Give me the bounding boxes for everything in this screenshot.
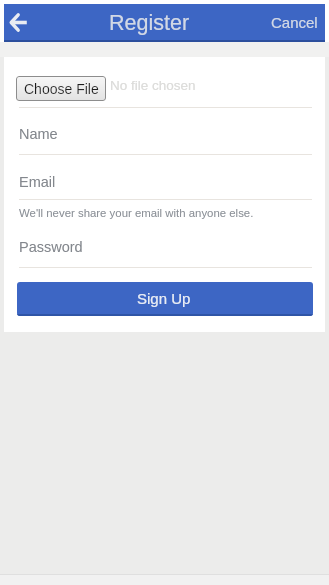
- button[interactable]: Cancel: [271, 15, 318, 32]
- staticText: Register: [109, 11, 190, 35]
- button[interactable]: Choose File: [16, 76, 106, 101]
- staticText: We'll never share your email with anyone…: [19, 207, 254, 220]
- staticText: Sign Up: [137, 290, 191, 307]
- button[interactable]: Sign Up: [17, 282, 313, 316]
- staticText: Email: [19, 174, 56, 190]
- staticText: Cancel: [271, 14, 318, 31]
- staticText: Password: [19, 239, 83, 255]
- staticText: No file chosen: [110, 78, 196, 93]
- staticText: Choose File: [24, 81, 99, 97]
- button[interactable]: [3, 6, 33, 38]
- staticText: Name: [19, 126, 58, 142]
